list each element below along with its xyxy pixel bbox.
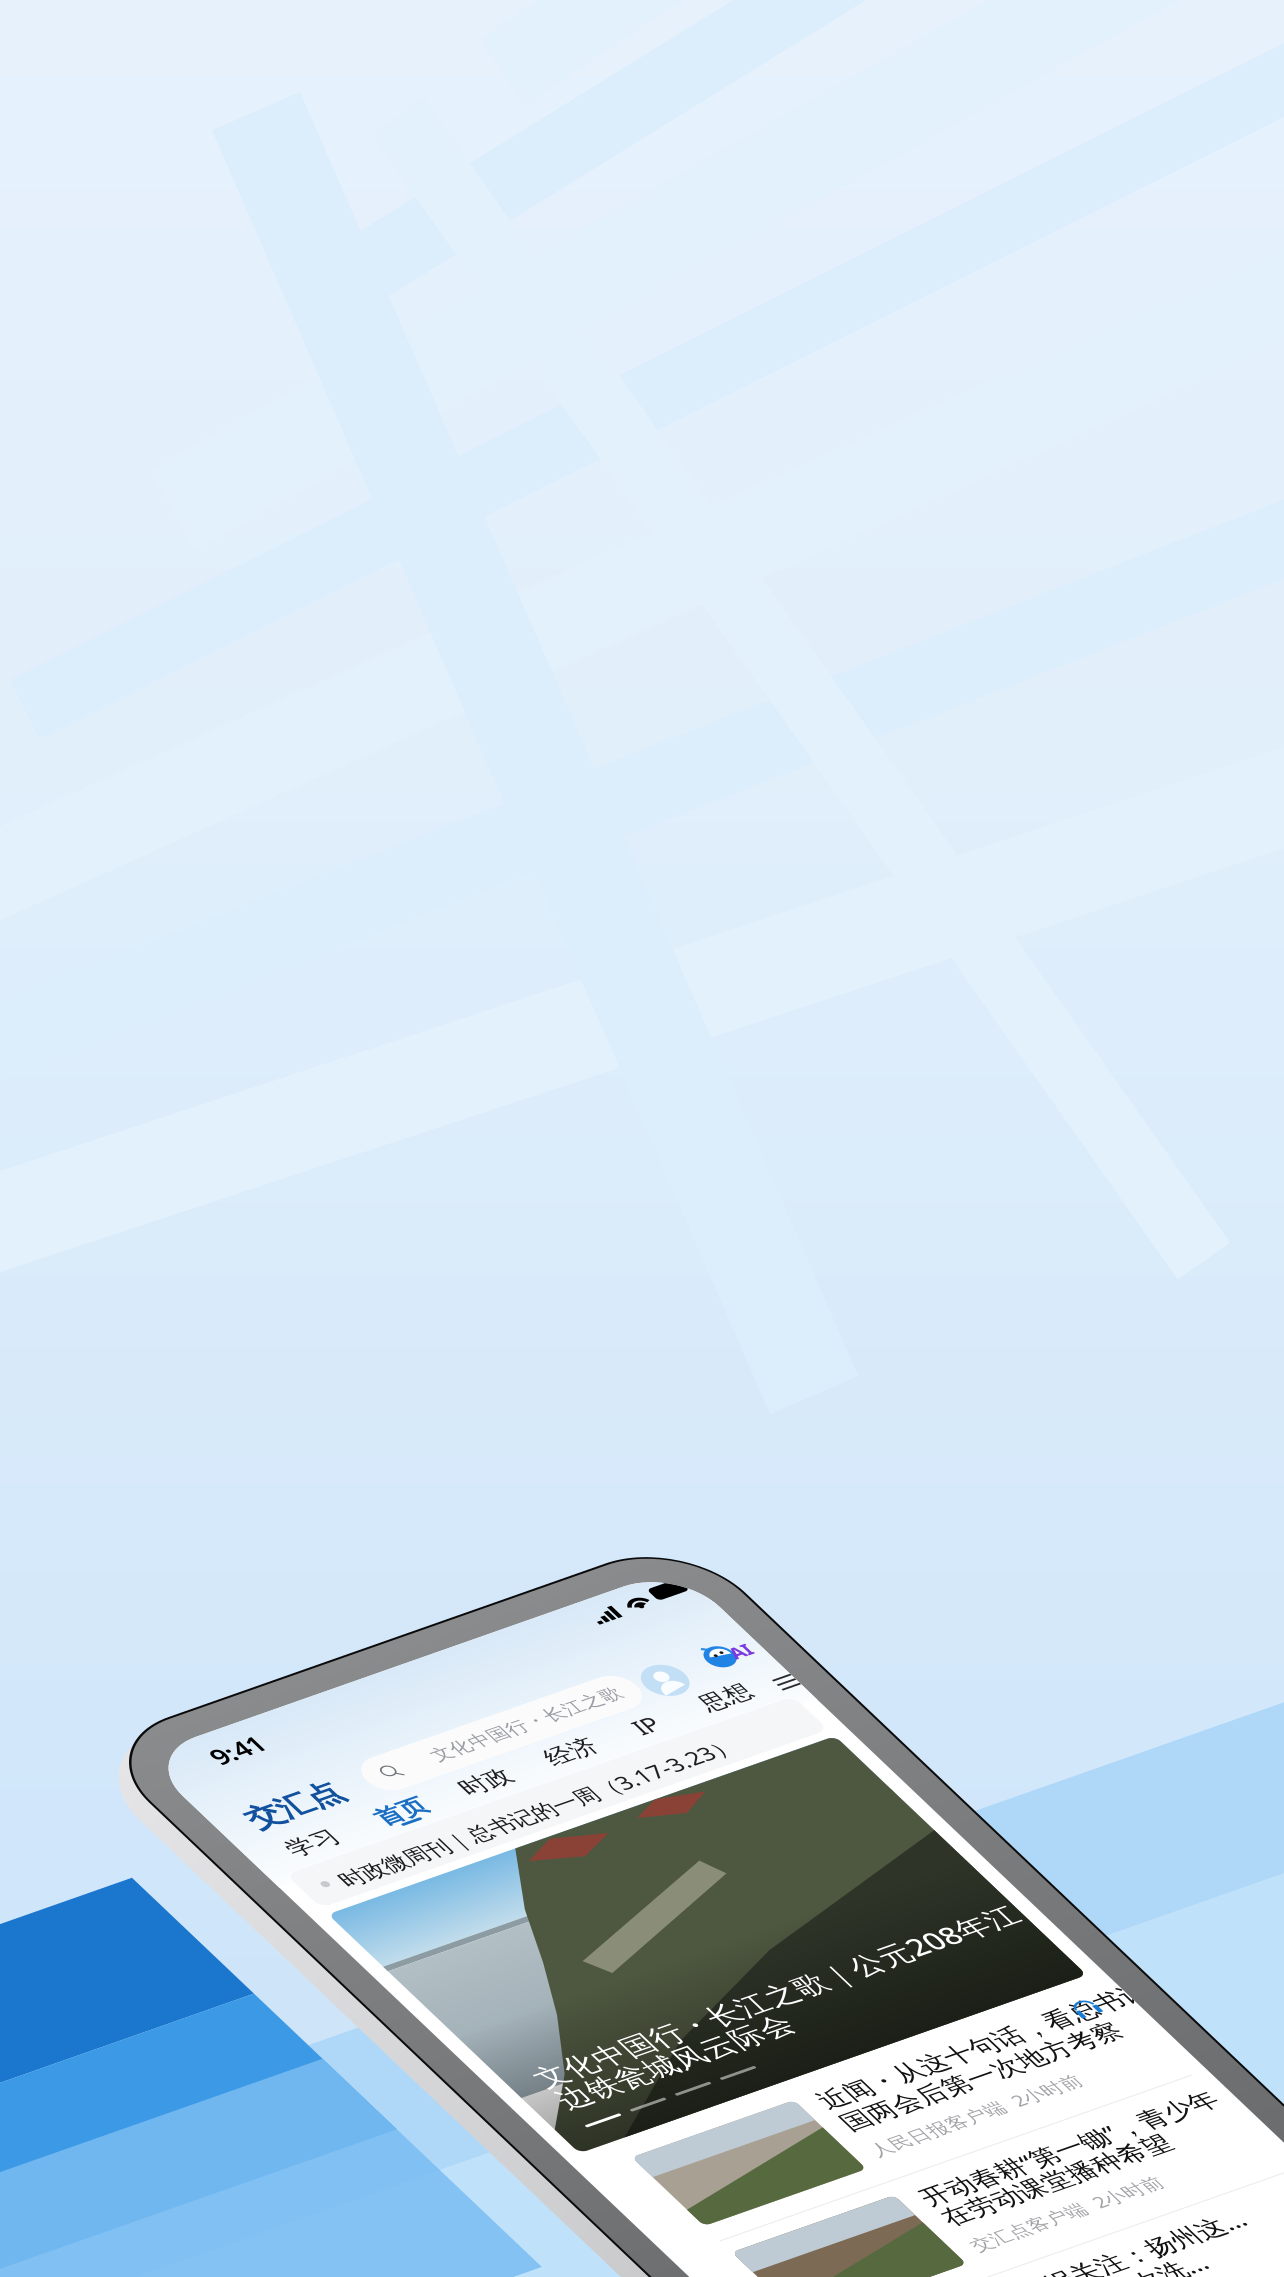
- staticText: 交汇点: [129, 1845, 201, 1874]
- staticText: 思想: [465, 1883, 503, 1906]
- staticText: 时政: [273, 1883, 311, 1906]
- staticText: 文化中国行・长江之歌｜公元208年江: [138, 2135, 521, 2165]
- staticText: IP: [411, 1882, 428, 1907]
- staticText: 近闻・从这十句话，看总书记全: [290, 2237, 570, 2261]
- staticText: 9:41: [146, 1785, 185, 1812]
- staticText: 学习: [134, 1883, 172, 1906]
- staticText: 文化中国行・长江之歌: [276, 1851, 426, 1869]
- staticText: AI: [513, 1852, 529, 1871]
- staticText: 时政微周刊｜总书记的一周（3.17-3.23）: [146, 1923, 460, 1946]
- staticText: 经济: [341, 1883, 379, 1906]
- staticText: 边铁瓮城风云际会: [138, 2161, 322, 2189]
- staticText: 首页: [205, 1883, 243, 1906]
